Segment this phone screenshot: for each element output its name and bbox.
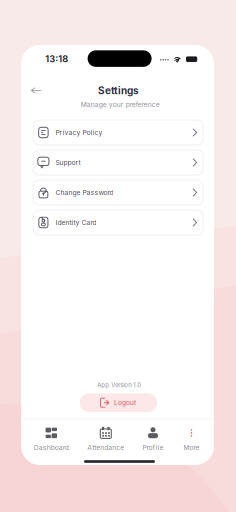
staticText: Attendance bbox=[87, 443, 124, 452]
staticText: Logout bbox=[114, 399, 136, 407]
staticText: Identity Card bbox=[55, 218, 96, 227]
staticText: Support bbox=[55, 158, 80, 167]
staticText: Privacy Policy bbox=[55, 128, 102, 137]
staticText: App Version 1.0 bbox=[97, 381, 141, 389]
button[interactable]: Logout bbox=[80, 393, 157, 412]
button[interactable]: Support bbox=[33, 150, 203, 175]
staticText: Manage your preference bbox=[81, 100, 160, 109]
button[interactable]: Back bbox=[25, 81, 47, 99]
button[interactable]: Privacy Policy bbox=[33, 120, 203, 145]
button[interactable]: Identity Card bbox=[33, 210, 203, 235]
staticText: Profile bbox=[142, 443, 163, 452]
button[interactable]: Change Password bbox=[33, 180, 203, 205]
staticText: More bbox=[183, 443, 199, 452]
staticText: 13:18 bbox=[45, 53, 68, 64]
button[interactable]: Attendance bbox=[84, 426, 128, 453]
button[interactable]: More bbox=[169, 426, 213, 453]
button[interactable]: Profile bbox=[131, 426, 175, 453]
button[interactable]: Dashboard bbox=[29, 426, 73, 453]
staticText: Settings bbox=[98, 84, 139, 97]
staticText: Change Password bbox=[55, 188, 113, 197]
staticText: Dashboard bbox=[34, 443, 69, 452]
